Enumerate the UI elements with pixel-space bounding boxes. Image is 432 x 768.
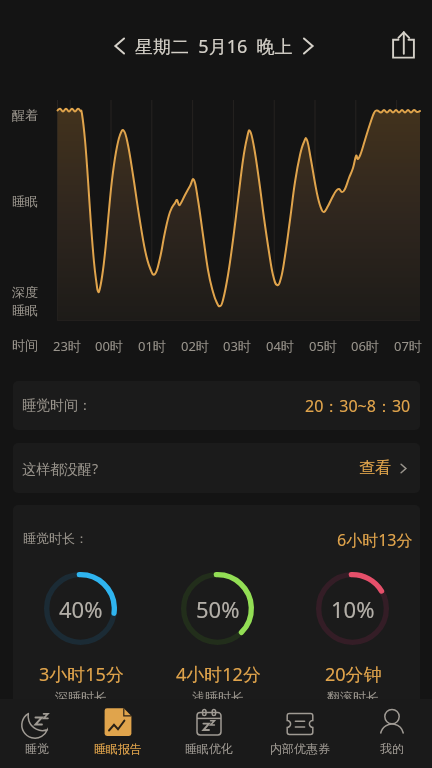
staticText: 浅睡时长 [192,689,244,705]
staticText: 睡觉 [25,741,49,756]
button[interactable]: 内部优惠券 [257,699,343,768]
staticText: 睡觉时长： [23,530,88,546]
button[interactable]: 睡觉 [0,699,80,768]
staticText: 6小时13分 [337,529,413,551]
staticText: 01时 [138,337,166,355]
staticText: 深度 睡眠 [12,284,38,318]
button[interactable]: 睡觉时间： [13,381,420,430]
staticText: 50% [196,594,240,624]
staticText: 20：30~8：30 [305,395,411,417]
staticText: 深睡时长 [55,689,107,705]
staticText: 睡眠优化 [185,741,233,756]
staticText: 这样都没醒? [22,459,99,478]
staticText: 05时 [309,337,337,355]
staticText: 03时 [223,337,251,355]
staticText: 23时 [53,337,81,355]
staticText: 07时 [394,337,422,355]
staticText: 20分钟 [325,662,382,687]
staticText: 3小时15分 [39,662,124,687]
staticText: 内部优惠券 [270,741,330,756]
button[interactable]: 睡眠报告 [75,699,161,768]
staticText: 40% [59,594,103,624]
staticText: 醒着 [12,107,38,123]
button[interactable]: 我的 [349,699,432,768]
button[interactable]: Share [383,23,425,65]
staticText: 06时 [351,337,379,355]
staticText: 睡觉时间： [22,397,92,415]
staticText: 00时 [95,337,123,355]
staticText: 睡眠 [12,193,38,209]
staticText: 我的 [380,741,404,756]
button[interactable]: 睡眠优化 [166,699,252,768]
staticText: 02时 [181,337,209,355]
staticText: 4小时12分 [176,662,261,687]
button[interactable]: 星期二 5月16 晚上 [112,30,316,62]
staticText: 时间 [12,337,38,353]
staticText: 翻滚时长 [327,689,379,705]
staticText: 睡眠报告 [94,741,142,756]
staticText: 10% [331,594,375,624]
staticText: 星期二 5月16 晚上 [135,34,293,59]
staticText: 查看 [359,458,391,478]
button[interactable]: 这样都没醒? [13,443,420,493]
staticText: 04时 [266,337,294,355]
